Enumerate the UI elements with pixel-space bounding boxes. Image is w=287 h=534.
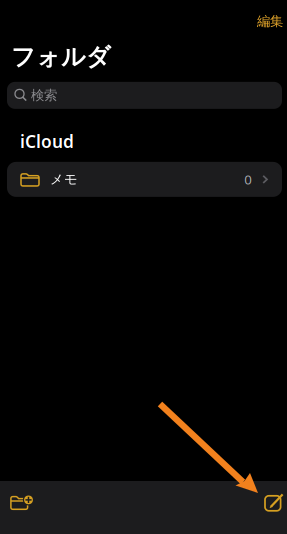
staticText: メモ — [50, 171, 78, 188]
button[interactable]: New Folder — [0, 480, 43, 533]
button[interactable]: 編集 — [253, 8, 287, 34]
staticText: 検索 — [31, 87, 57, 104]
staticText: 0 — [244, 170, 252, 188]
staticText: フォルダ — [11, 42, 111, 72]
button[interactable]: メモ — [7, 162, 282, 197]
staticText: 編集 — [257, 13, 283, 29]
button[interactable]: New Note — [255, 480, 287, 534]
staticText: iCloud — [20, 130, 74, 153]
